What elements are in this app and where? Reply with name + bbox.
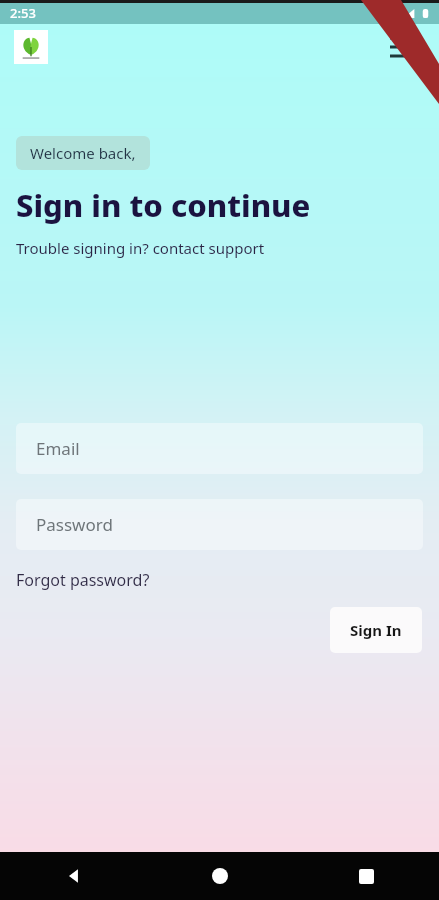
staticText: Password: [36, 513, 113, 536]
staticText: Welcome back,: [30, 143, 136, 163]
staticText: Email: [36, 437, 80, 460]
button[interactable]: Recent apps: [293, 852, 439, 900]
staticText: Trouble signing in? contact support: [16, 238, 265, 258]
button[interactable]: Forgot password?: [16, 569, 150, 591]
button[interactable]: Back: [0, 852, 147, 900]
button[interactable]: App logo: [14, 30, 48, 64]
button[interactable]: Password: [16, 499, 423, 550]
staticText: Sign In: [350, 620, 402, 640]
staticText: Forgot password?: [16, 569, 150, 591]
button[interactable]: Home: [147, 852, 293, 900]
staticText: Sign in to continue: [16, 184, 311, 226]
button[interactable]: Email: [16, 423, 423, 474]
button[interactable]: Menu: [385, 27, 425, 67]
button[interactable]: Sign In: [330, 607, 422, 653]
staticText: 2:53: [10, 4, 36, 22]
